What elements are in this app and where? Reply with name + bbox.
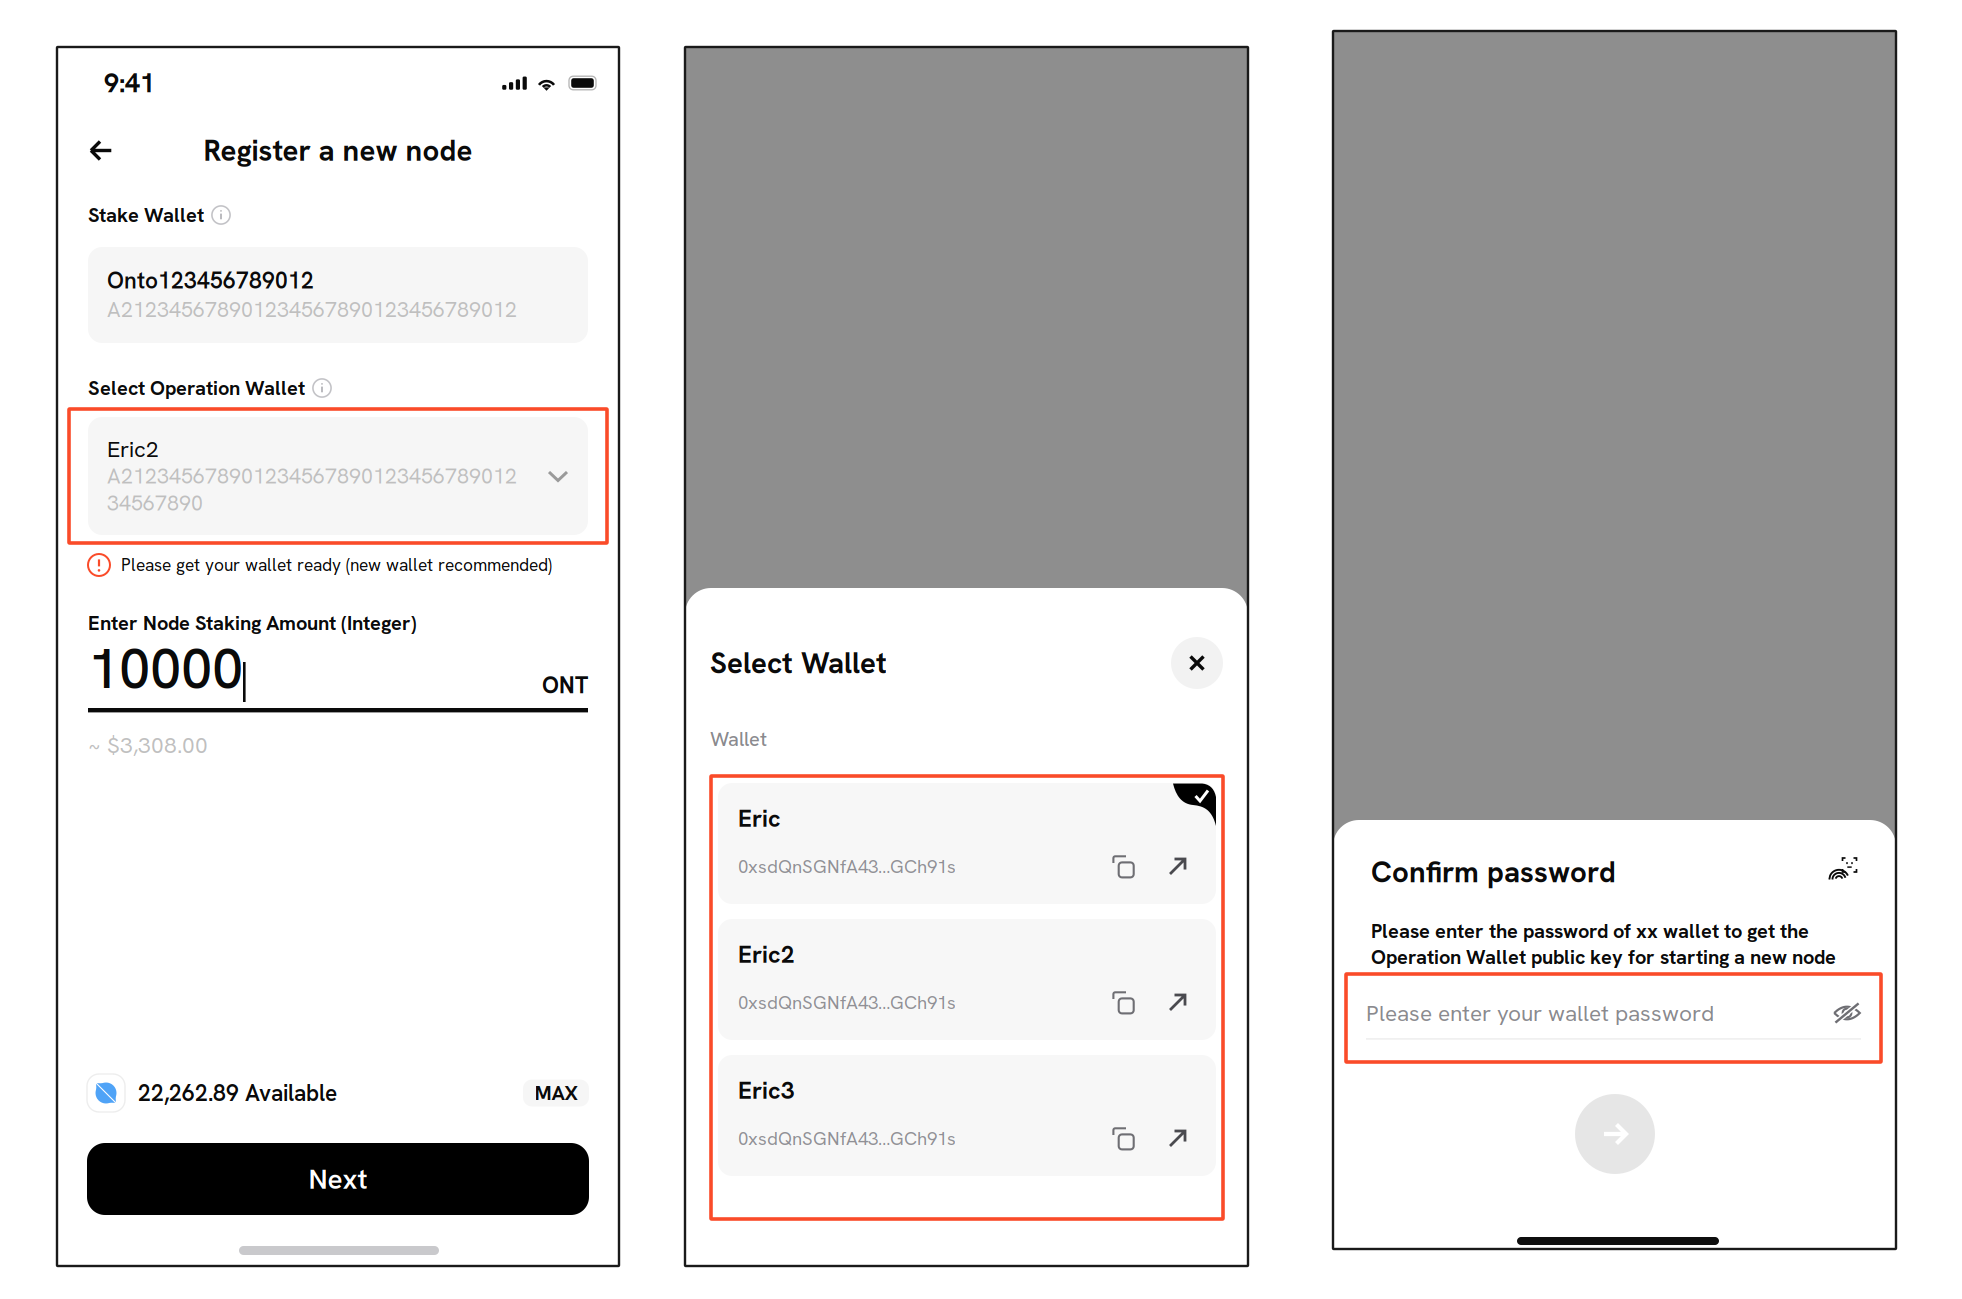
staticText: Onto123456789012 <box>107 266 314 295</box>
staticText: Please enter the password of xx wallet t… <box>1371 918 1836 970</box>
button[interactable]: Close <box>1171 637 1223 689</box>
staticText: 9:41 <box>104 66 155 100</box>
staticText: 0xsdQnSGNfA43…GCh91s <box>738 854 956 879</box>
button[interactable]: MAX <box>523 1079 589 1106</box>
staticText: Next <box>308 1161 367 1197</box>
button[interactable]: Eric3 <box>718 1055 1216 1176</box>
staticText: 34567890 <box>107 489 203 517</box>
staticText: ONT <box>542 670 588 700</box>
button[interactable]: Eric2 <box>69 409 607 543</box>
button[interactable]: Back <box>79 130 123 171</box>
staticText: Enter Node Staking Amount (Integer) <box>88 610 417 636</box>
staticText: Please enter your wallet password <box>1366 998 1714 1028</box>
staticText: Please get your wallet ready (new wallet… <box>121 554 552 576</box>
staticText: ~ $3,308.00 <box>88 730 208 760</box>
staticText: Register a new node <box>203 131 472 170</box>
button[interactable]: Next <box>87 1143 589 1215</box>
staticText: Eric <box>738 803 781 834</box>
staticText: 10000 <box>88 632 243 705</box>
staticText: A212345678901234567890123456789012 <box>107 462 517 490</box>
button[interactable]: Use biometrics <box>1827 856 1858 887</box>
button[interactable]: Eric <box>718 783 1216 904</box>
staticText: 0xsdQnSGNfA43…GCh91s <box>738 990 956 1015</box>
staticText: A212345678901234567890123456789012 <box>107 296 517 323</box>
staticText: 22,262.89 Available <box>138 1078 337 1108</box>
staticText: Confirm password <box>1371 853 1616 891</box>
staticText: 0xsdQnSGNfA43…GCh91s <box>738 1126 956 1151</box>
staticText: Wallet <box>710 726 767 752</box>
staticText: MAX <box>534 1080 577 1106</box>
button[interactable]: Eric2 <box>718 919 1216 1040</box>
button[interactable]: Continue <box>1575 1094 1655 1174</box>
staticText: Eric3 <box>738 1075 794 1106</box>
staticText: Select Operation Wallet <box>88 375 305 401</box>
staticText: Stake Wallet <box>88 202 204 228</box>
staticText: Eric2 <box>738 939 794 970</box>
staticText: Select Wallet <box>710 644 887 682</box>
staticText: Eric2 <box>107 434 159 464</box>
